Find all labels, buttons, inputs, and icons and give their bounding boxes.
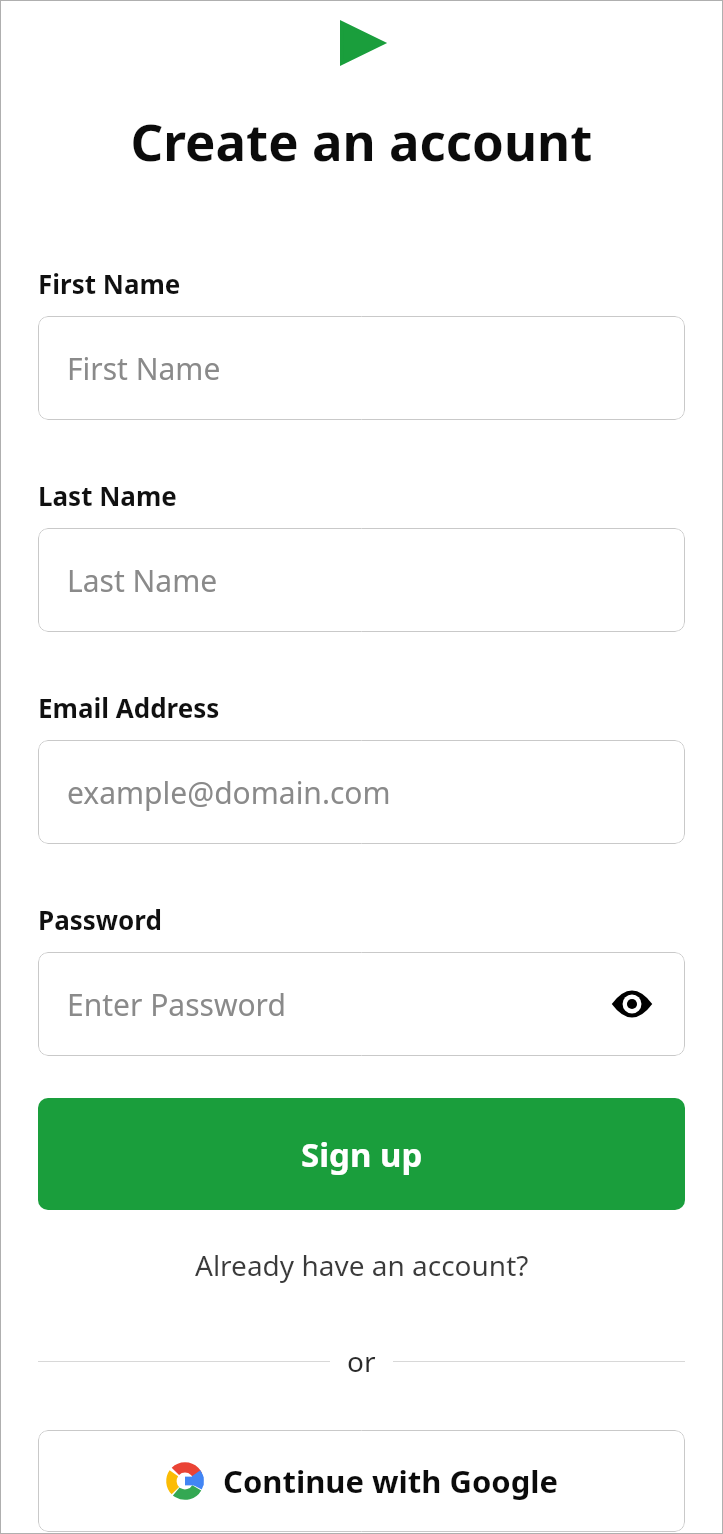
staticText: First Name	[67, 348, 221, 389]
staticText: First Name	[38, 266, 181, 301]
button[interactable]: Already have an account?	[38, 1238, 685, 1292]
staticText: Enter Password	[67, 984, 286, 1025]
button[interactable]: Last Name	[38, 528, 685, 632]
button[interactable]: Continue with Google	[38, 1430, 685, 1532]
button[interactable]: Show password	[608, 980, 656, 1028]
staticText: Create an account	[38, 106, 685, 175]
staticText: Continue with Google	[223, 1460, 559, 1502]
button[interactable]: Enter Password	[38, 952, 685, 1056]
button[interactable]: example@domain.com	[38, 740, 685, 844]
button[interactable]: Sign up	[38, 1098, 685, 1210]
staticText: Last Name	[38, 478, 177, 513]
staticText: Sign up	[301, 1132, 423, 1177]
staticText: Email Address	[38, 690, 220, 725]
staticText: Password	[38, 902, 162, 937]
staticText: example@domain.com	[67, 772, 391, 813]
staticText: Already have an account?	[195, 1246, 529, 1284]
button[interactable]: First Name	[38, 316, 685, 420]
staticText: or	[347, 1342, 376, 1380]
staticText: Last Name	[67, 560, 218, 601]
